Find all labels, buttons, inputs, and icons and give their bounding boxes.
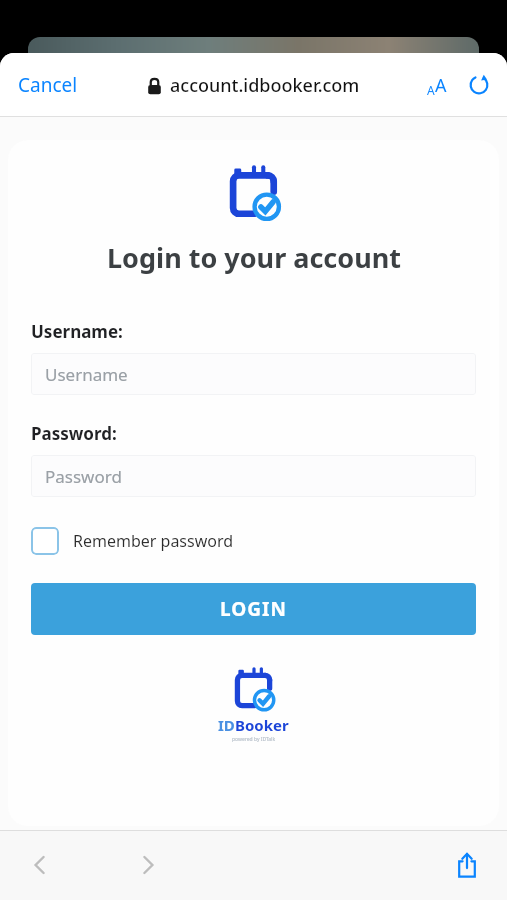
staticText: A	[427, 82, 435, 98]
staticText: Login to your account	[107, 239, 401, 276]
staticText: Remember password	[73, 530, 234, 552]
button[interactable]: Text size	[419, 67, 455, 103]
staticText: A	[435, 73, 447, 98]
button[interactable]: Forward	[122, 839, 174, 891]
staticText: Password	[45, 465, 122, 488]
staticText: account.idbooker.com	[170, 73, 360, 98]
button[interactable]: LOGIN	[31, 583, 476, 635]
button[interactable]: Remember password	[31, 527, 234, 555]
staticText: ID	[218, 715, 235, 735]
staticText: Password:	[31, 422, 117, 445]
button[interactable]: Cancel	[8, 66, 88, 104]
button[interactable]: Reload	[461, 67, 497, 103]
button[interactable]: Share	[441, 839, 493, 891]
staticText: Cancel	[18, 72, 78, 98]
staticText: Username	[45, 363, 128, 386]
button[interactable]: Back	[14, 839, 66, 891]
staticText: LOGIN	[220, 596, 287, 622]
staticText: Username:	[31, 320, 123, 343]
staticText: powered by IDTalk	[232, 736, 276, 743]
button[interactable]: Password	[31, 455, 476, 497]
staticText: Booker	[235, 715, 289, 735]
button[interactable]: Username	[31, 353, 476, 395]
